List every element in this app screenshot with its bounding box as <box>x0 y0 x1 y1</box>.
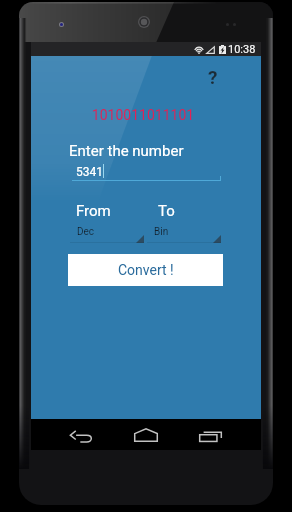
staticText: Bin <box>154 226 169 238</box>
staticText: Dec <box>77 226 95 238</box>
button[interactable]: Home <box>126 422 166 448</box>
staticText: ? <box>208 66 218 88</box>
button[interactable]: Convert ! <box>68 254 223 286</box>
button[interactable]: Back <box>62 423 102 449</box>
staticText: Convert ! <box>118 262 174 278</box>
staticText: From <box>76 202 111 220</box>
staticText: To <box>158 202 175 220</box>
staticText: Enter the number <box>69 142 184 160</box>
button[interactable]: Bin <box>147 225 221 243</box>
button[interactable]: Help <box>200 64 226 90</box>
staticText: 5341 <box>76 165 103 179</box>
staticText: 1010011011101 <box>28 107 258 123</box>
staticText: 10:38 <box>228 43 256 56</box>
button[interactable]: Recents <box>190 422 230 448</box>
button[interactable]: Dec <box>70 225 144 243</box>
